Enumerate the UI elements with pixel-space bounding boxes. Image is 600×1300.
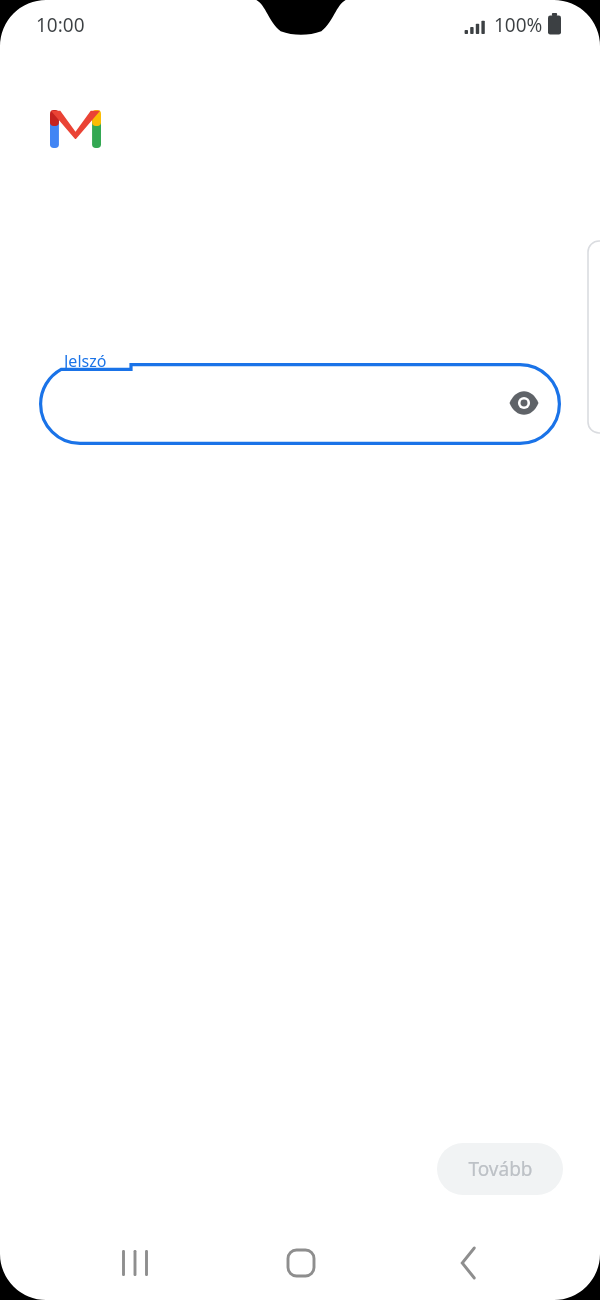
staticText: 100%	[494, 12, 543, 38]
button[interactable]	[39, 363, 561, 445]
staticText: Tovább	[468, 1156, 533, 1182]
button[interactable]: Recents	[95, 1231, 175, 1295]
button[interactable]: Back	[428, 1231, 508, 1295]
button[interactable]: Jelszó megjelenítése	[500, 379, 548, 427]
button[interactable]: Home	[261, 1231, 341, 1295]
staticText: Jelszó	[64, 350, 107, 372]
staticText: 10:00	[36, 12, 85, 38]
button[interactable]: Tovább	[437, 1143, 563, 1195]
